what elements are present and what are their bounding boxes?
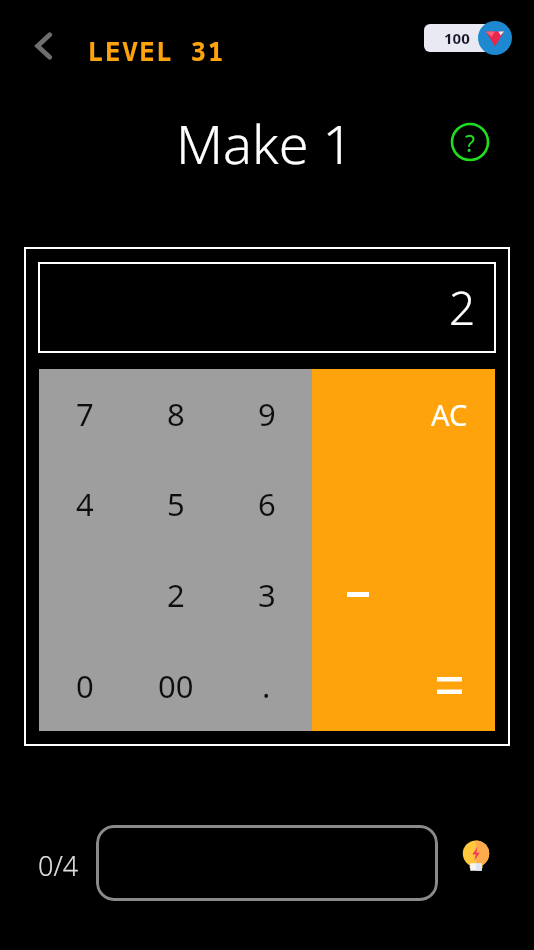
button[interactable] [403,640,495,731]
staticText: LEVEL 31 [88,33,225,68]
staticText: 4 [76,483,94,525]
staticText: 100 [444,28,470,48]
staticText: Make 1 [176,106,354,178]
staticText: 2 [449,276,476,339]
staticText: 7 [76,393,94,435]
staticText: ? [465,127,475,158]
button[interactable]: 7 [39,369,130,459]
button[interactable] [312,549,403,640]
staticText: 8 [167,393,185,435]
button[interactable]: 9 [221,369,312,459]
button[interactable]: 0 [39,640,130,731]
staticText: . [262,665,271,707]
button[interactable]: 5 [130,459,221,549]
staticText: AC [431,395,468,434]
staticText: 0/4 [38,847,79,884]
button[interactable]: . [221,640,312,731]
button[interactable]: 2 [130,549,221,640]
staticText: 3 [258,574,276,616]
button[interactable]: 8 [130,369,221,459]
button[interactable]: Hint [452,834,500,882]
button[interactable]: 4 [39,459,130,549]
staticText: 0 [76,665,94,707]
staticText: 2 [167,574,185,616]
staticText: 00 [158,665,194,707]
staticText: 5 [167,483,185,525]
button[interactable]: Help [448,120,492,164]
button[interactable]: 6 [221,459,312,549]
staticText: 6 [258,483,276,525]
button[interactable]: Back [20,22,68,70]
button[interactable]: Answer area [96,825,438,901]
button[interactable]: AC [403,369,495,459]
button[interactable]: Gems: 100 [424,21,524,55]
button[interactable]: 00 [130,640,221,731]
staticText: 9 [258,393,276,435]
button[interactable]: 3 [221,549,312,640]
